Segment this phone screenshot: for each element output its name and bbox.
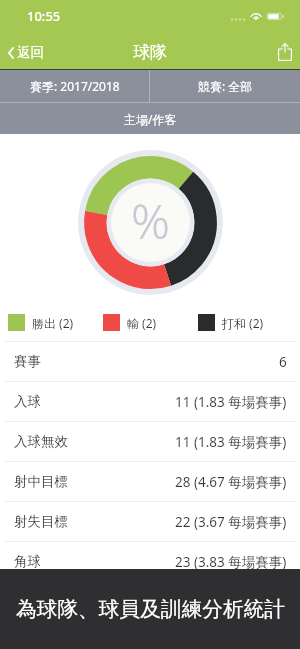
staticText: 賽季: 2017/2018 <box>30 78 120 94</box>
staticText: 返回 <box>17 44 44 61</box>
staticText: 打和 (2) <box>222 315 264 331</box>
staticText: % <box>131 188 170 253</box>
staticText: 11 (1.83 每場賽事) <box>175 433 287 451</box>
staticText: 勝出 (2) <box>32 315 74 331</box>
staticText: 球隊 <box>133 42 167 63</box>
staticText: 輸 (2) <box>127 315 157 331</box>
staticText: 10:55 <box>27 7 61 25</box>
button[interactable]: 主場/作客 <box>0 103 300 134</box>
staticText: 射中目標 <box>14 473 68 490</box>
staticText: 6 <box>279 353 287 371</box>
button[interactable]: 賽季: 2017/2018 <box>0 70 149 102</box>
staticText: 23 (3.83 每場賽事) <box>175 553 287 571</box>
staticText: 入球 <box>14 393 41 410</box>
staticText: 賽事 <box>14 353 41 370</box>
staticText: 角球 <box>14 553 41 570</box>
button[interactable]: Share <box>268 37 300 67</box>
staticText: 射失目標 <box>14 513 68 530</box>
staticText: 入球無效 <box>14 433 68 450</box>
staticText: 28 (4.67 每場賽事) <box>175 473 287 491</box>
staticText: 主場/作客 <box>124 111 177 127</box>
button[interactable]: 射中目標 <box>0 462 300 501</box>
button[interactable]: 入球 <box>0 382 300 421</box>
staticText: 為球隊、球員及訓練分析統計 <box>16 596 285 622</box>
button[interactable]: 賽事 <box>0 342 300 381</box>
button[interactable]: 返回 <box>0 39 56 66</box>
button[interactable]: 射失目標 <box>0 502 300 541</box>
staticText: 11 (1.83 每場賽事) <box>175 393 287 411</box>
staticText: 競賽: 全部 <box>198 78 253 94</box>
staticText: 22 (3.67 每場賽事) <box>175 513 287 531</box>
button[interactable]: 競賽: 全部 <box>150 70 300 102</box>
button[interactable]: 入球無效 <box>0 422 300 461</box>
button[interactable]: 角球 <box>0 542 300 581</box>
